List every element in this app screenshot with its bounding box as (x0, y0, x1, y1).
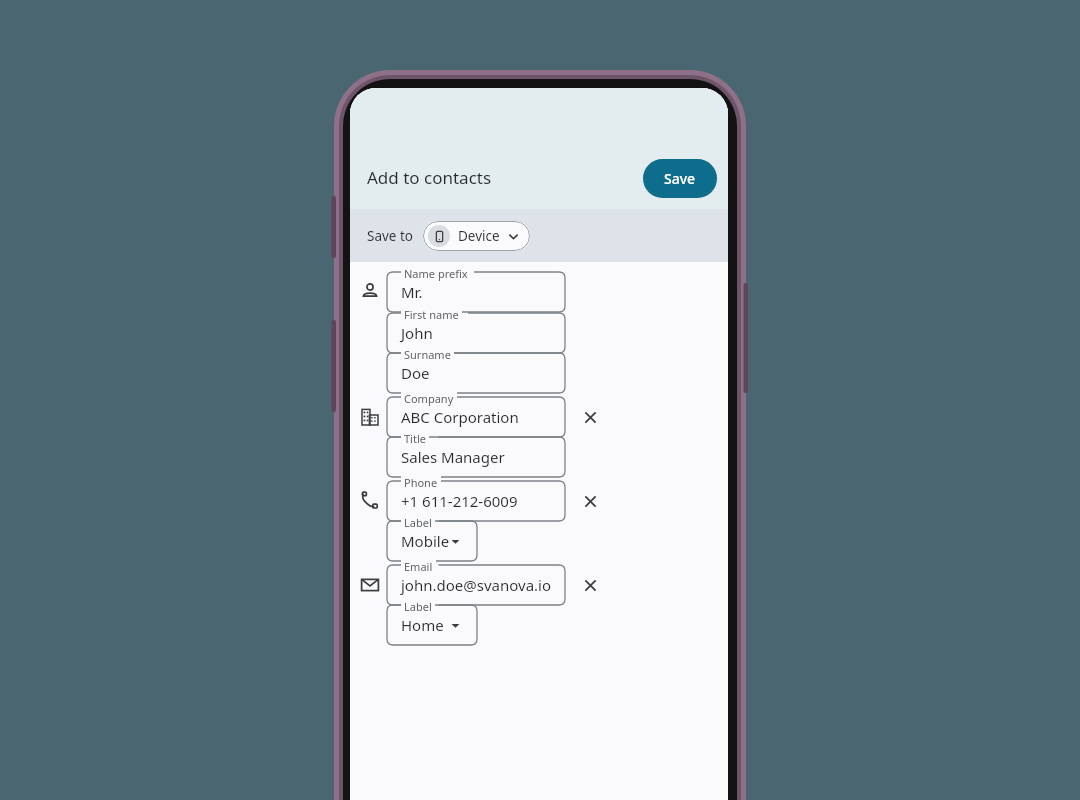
button[interactable]: Label (387, 605, 477, 645)
button[interactable]: Phone (387, 481, 565, 521)
button[interactable]: Company (387, 397, 565, 437)
staticText: Email (404, 559, 433, 574)
staticText: First name (404, 307, 459, 322)
staticText: Mr. (401, 282, 423, 302)
staticText: Save (664, 169, 696, 188)
button[interactable]: Title (387, 437, 565, 477)
button[interactable]: Label (387, 521, 477, 561)
staticText: Phone (404, 475, 438, 490)
staticText: +1 611-212-6009 (401, 491, 518, 511)
staticText: Title (404, 431, 426, 446)
button[interactable]: Remove field (573, 400, 607, 434)
staticText: Home (401, 615, 444, 635)
staticText: John (401, 323, 433, 343)
staticText: Sales Manager (401, 447, 505, 467)
button[interactable]: Name prefix (387, 272, 565, 312)
button[interactable]: Device (423, 221, 530, 251)
button[interactable]: Remove field (573, 484, 607, 518)
staticText: Company (404, 391, 454, 406)
button[interactable]: First name (387, 313, 565, 353)
staticText: Mobile (401, 531, 450, 551)
staticText: ABC Corporation (401, 407, 519, 427)
button[interactable]: Save (643, 159, 717, 198)
button[interactable]: Surname (387, 353, 565, 393)
staticText: Save to (367, 227, 414, 245)
staticText: Label (404, 599, 432, 614)
staticText: Name prefix (404, 266, 468, 281)
button[interactable]: Remove field (573, 568, 607, 602)
staticText: Label (404, 515, 432, 530)
staticText: Doe (401, 363, 430, 383)
button[interactable]: Email (387, 565, 565, 605)
staticText: Add to contacts (367, 166, 492, 189)
staticText: Surname (404, 347, 451, 362)
staticText: Device (458, 227, 500, 245)
staticText: john.doe@svanova.io (401, 575, 552, 595)
